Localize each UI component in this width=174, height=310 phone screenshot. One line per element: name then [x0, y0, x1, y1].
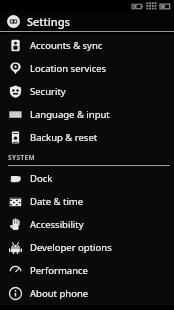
button[interactable]: Performance	[0, 259, 174, 282]
button[interactable]: Developer options	[0, 236, 174, 259]
staticText: Performance	[30, 264, 88, 277]
staticText: Backup & reset	[30, 131, 98, 144]
staticText: SYSTEM	[8, 153, 36, 162]
staticText: Dock	[30, 172, 53, 185]
staticText: Security	[30, 85, 66, 98]
button[interactable]: Settings	[0, 11, 174, 31]
staticText: Accessibility	[30, 218, 84, 231]
button[interactable]: Location services	[0, 57, 174, 80]
button[interactable]: Language & input	[0, 103, 174, 126]
button[interactable]: Security	[0, 80, 174, 103]
staticText: About phone	[30, 287, 89, 300]
button[interactable]: Backup & reset	[0, 126, 174, 149]
button[interactable]: Accessibility	[0, 213, 174, 236]
staticText: Accounts & sync	[30, 39, 103, 52]
staticText: Language & input	[30, 108, 110, 121]
staticText: Developer options	[30, 241, 112, 254]
button[interactable]: Dock	[0, 167, 174, 190]
staticText: Date & time	[30, 195, 84, 208]
staticText: Settings	[27, 14, 70, 29]
button[interactable]: Accounts & sync	[0, 34, 174, 57]
staticText: Location services	[30, 62, 107, 75]
button[interactable]: About phone	[0, 282, 174, 305]
button[interactable]: Date & time	[0, 190, 174, 213]
